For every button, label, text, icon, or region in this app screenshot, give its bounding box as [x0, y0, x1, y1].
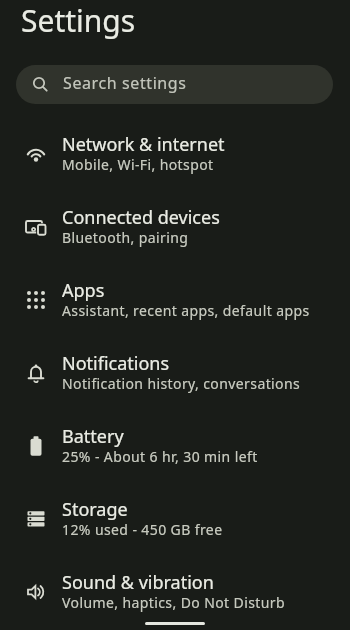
staticText: Storage: [62, 497, 128, 522]
staticText: 25% - About 6 hr, 30 min left: [62, 447, 258, 466]
staticText: Apps: [62, 278, 105, 303]
button[interactable]: Connected devices: [0, 190, 350, 263]
button[interactable]: Sound & vibration: [0, 555, 350, 628]
button[interactable]: Storage: [0, 482, 350, 555]
staticText: Bluetooth, pairing: [62, 228, 189, 247]
staticText: Notification history, conversations: [62, 374, 301, 393]
staticText: Connected devices: [62, 205, 220, 230]
button[interactable]: Search settings: [16, 65, 333, 104]
staticText: Mobile, Wi-Fi, hotspot: [62, 155, 214, 174]
staticText: Assistant, recent apps, default apps: [62, 301, 310, 320]
staticText: Network & internet: [62, 132, 225, 157]
staticText: Search settings: [63, 72, 187, 94]
staticText: Battery: [62, 424, 124, 449]
button[interactable]: Apps: [0, 263, 350, 336]
button[interactable]: Battery: [0, 409, 350, 482]
button[interactable]: Network & internet: [0, 117, 350, 190]
staticText: Volume, haptics, Do Not Disturb: [62, 593, 286, 612]
staticText: Notifications: [62, 351, 170, 376]
staticText: 12% used - 450 GB free: [62, 520, 223, 539]
staticText: Sound & vibration: [62, 570, 214, 595]
staticText: Settings: [21, 0, 136, 41]
button[interactable]: Notifications: [0, 336, 350, 409]
